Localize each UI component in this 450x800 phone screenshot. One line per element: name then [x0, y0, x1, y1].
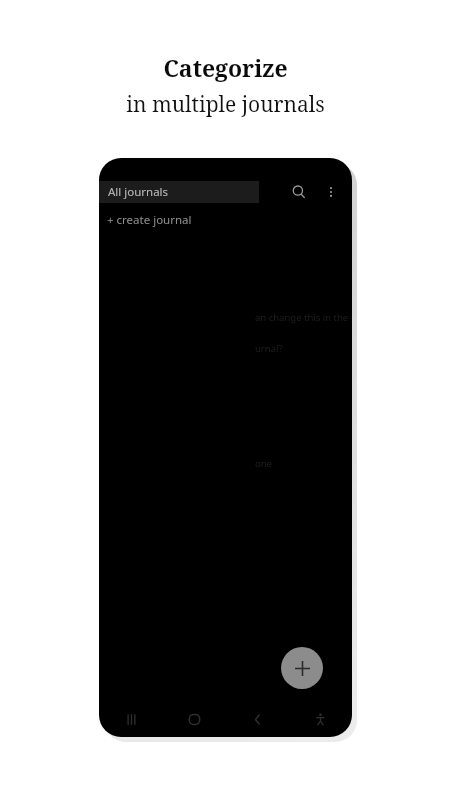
staticText: All journals	[108, 184, 169, 200]
staticText: + create journal	[107, 212, 192, 228]
staticText: Categorize	[163, 52, 288, 83]
button[interactable]: Recent apps	[99, 701, 163, 737]
button[interactable]: Search	[284, 177, 314, 207]
button[interactable]: Home	[163, 701, 226, 737]
staticText: one	[255, 457, 272, 470]
staticText: urnal?	[255, 342, 283, 355]
button[interactable]: More options	[316, 177, 346, 207]
button[interactable]: + create journal	[99, 210, 352, 230]
staticText: an change this in the	[255, 311, 349, 324]
button[interactable]: Back	[226, 701, 289, 737]
button[interactable]: Accessibility	[289, 701, 352, 737]
button[interactable]: Add entry	[281, 647, 323, 689]
button[interactable]: All journals	[99, 181, 259, 203]
staticText: in multiple journals	[126, 90, 325, 119]
